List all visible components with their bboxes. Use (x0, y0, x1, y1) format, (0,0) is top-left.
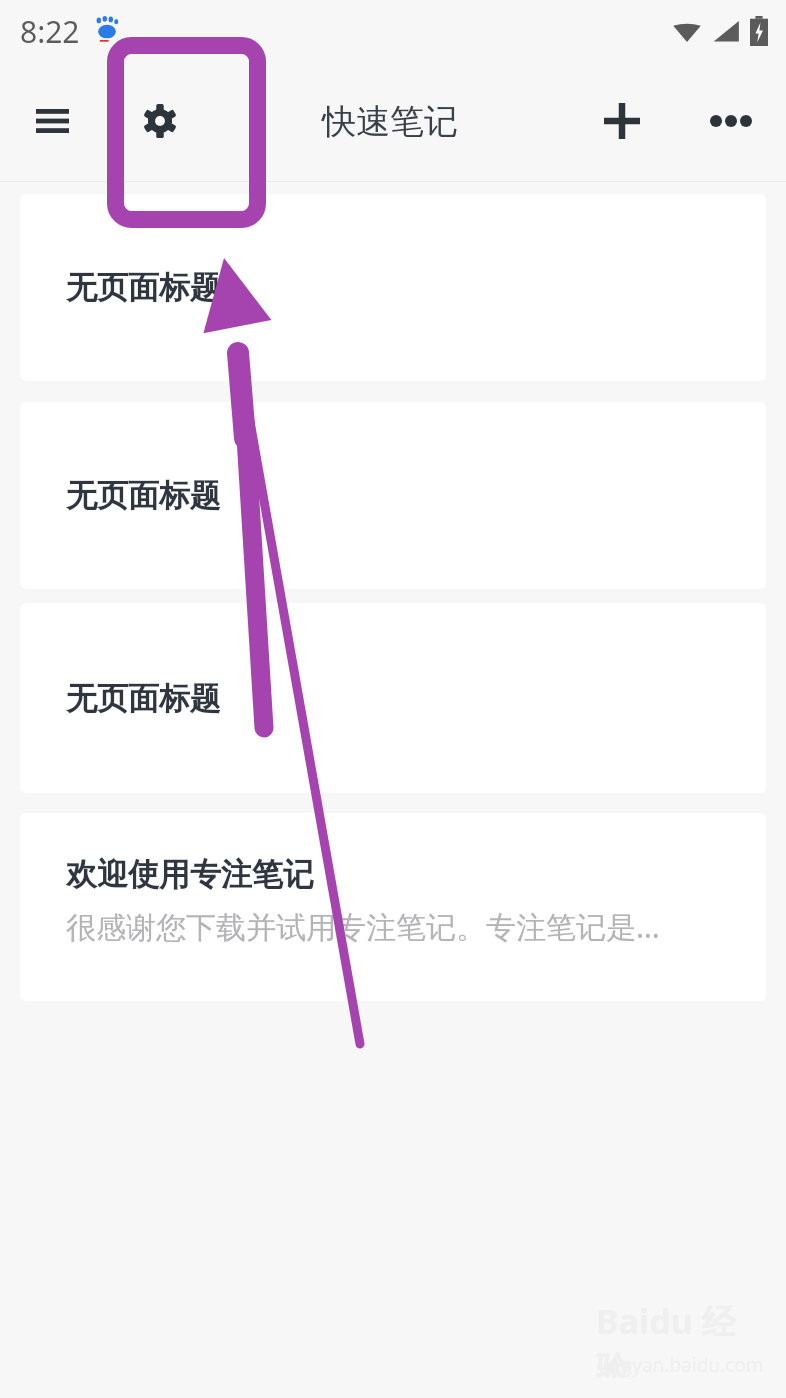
staticText: Baidu 经验 (596, 1298, 766, 1378)
staticText: 无页面标题 (66, 679, 221, 718)
button[interactable]: Add note (584, 83, 660, 159)
button[interactable]: 无页面标题 (20, 194, 766, 381)
staticText: jingyan.baidu.com (599, 1352, 764, 1378)
button[interactable]: 无页面标题 (20, 603, 766, 793)
button[interactable]: Menu (14, 83, 90, 159)
staticText: 很感谢您下载并试用专注笔记。专注笔记是… (66, 906, 660, 947)
staticText: 快速笔记 (322, 100, 458, 143)
button[interactable]: 无页面标题 (20, 402, 766, 589)
staticText: 欢迎使用专注笔记 (66, 855, 314, 894)
staticText: 无页面标题 (66, 268, 221, 307)
staticText: 8:22 (20, 11, 80, 52)
button[interactable]: Settings (122, 83, 198, 159)
button[interactable]: 欢迎使用专注笔记 (20, 813, 766, 1001)
staticText: 无页面标题 (66, 476, 221, 515)
button[interactable]: More options (693, 83, 769, 159)
